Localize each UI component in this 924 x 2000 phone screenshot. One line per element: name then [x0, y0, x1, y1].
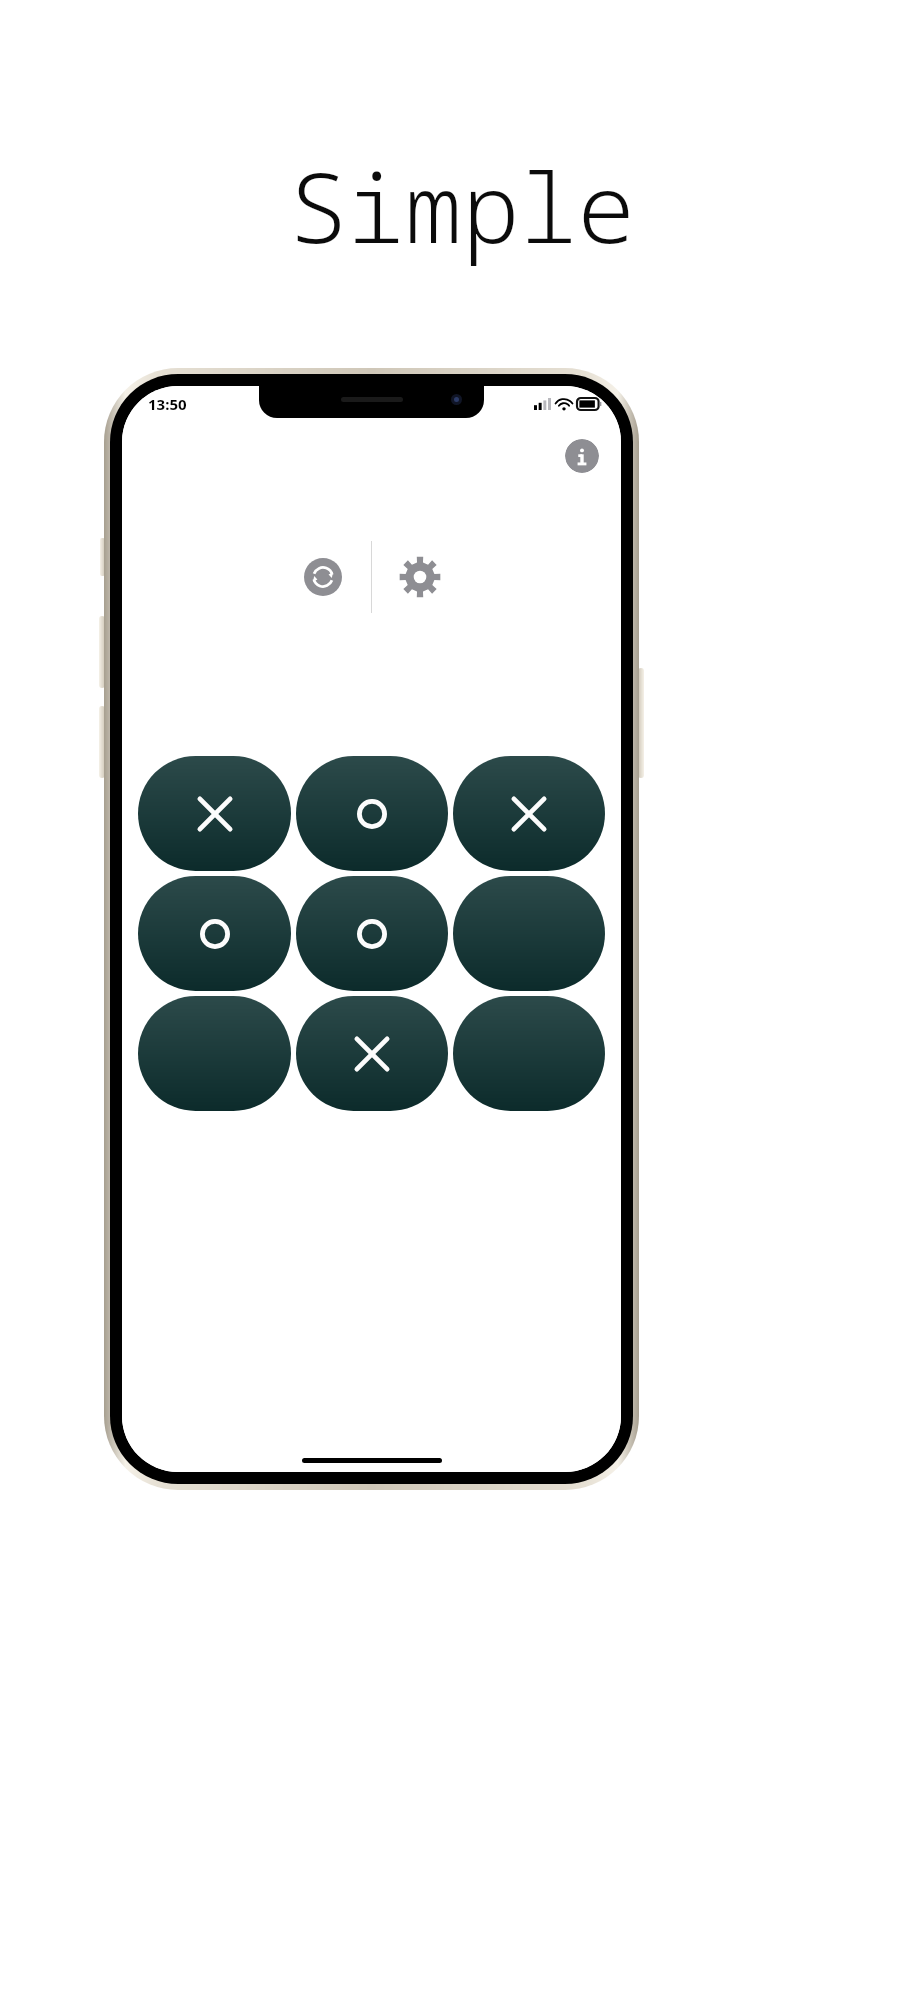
button[interactable]: Cell O [296, 756, 448, 871]
button[interactable]: Info [565, 439, 599, 473]
button[interactable]: Restart game [301, 555, 345, 599]
button[interactable]: Empty cell [138, 996, 291, 1111]
button[interactable]: Cell O [296, 876, 448, 991]
button[interactable]: Empty cell [453, 996, 605, 1111]
button[interactable]: Cell X [138, 756, 291, 871]
button[interactable]: Cell X [453, 756, 605, 871]
button[interactable]: Cell X [296, 996, 448, 1111]
staticText: 13:50 [148, 394, 187, 414]
staticText: Simple [289, 140, 635, 271]
button[interactable]: Cell O [138, 876, 291, 991]
button[interactable]: Empty cell [453, 876, 605, 991]
button[interactable]: Settings [398, 555, 442, 599]
